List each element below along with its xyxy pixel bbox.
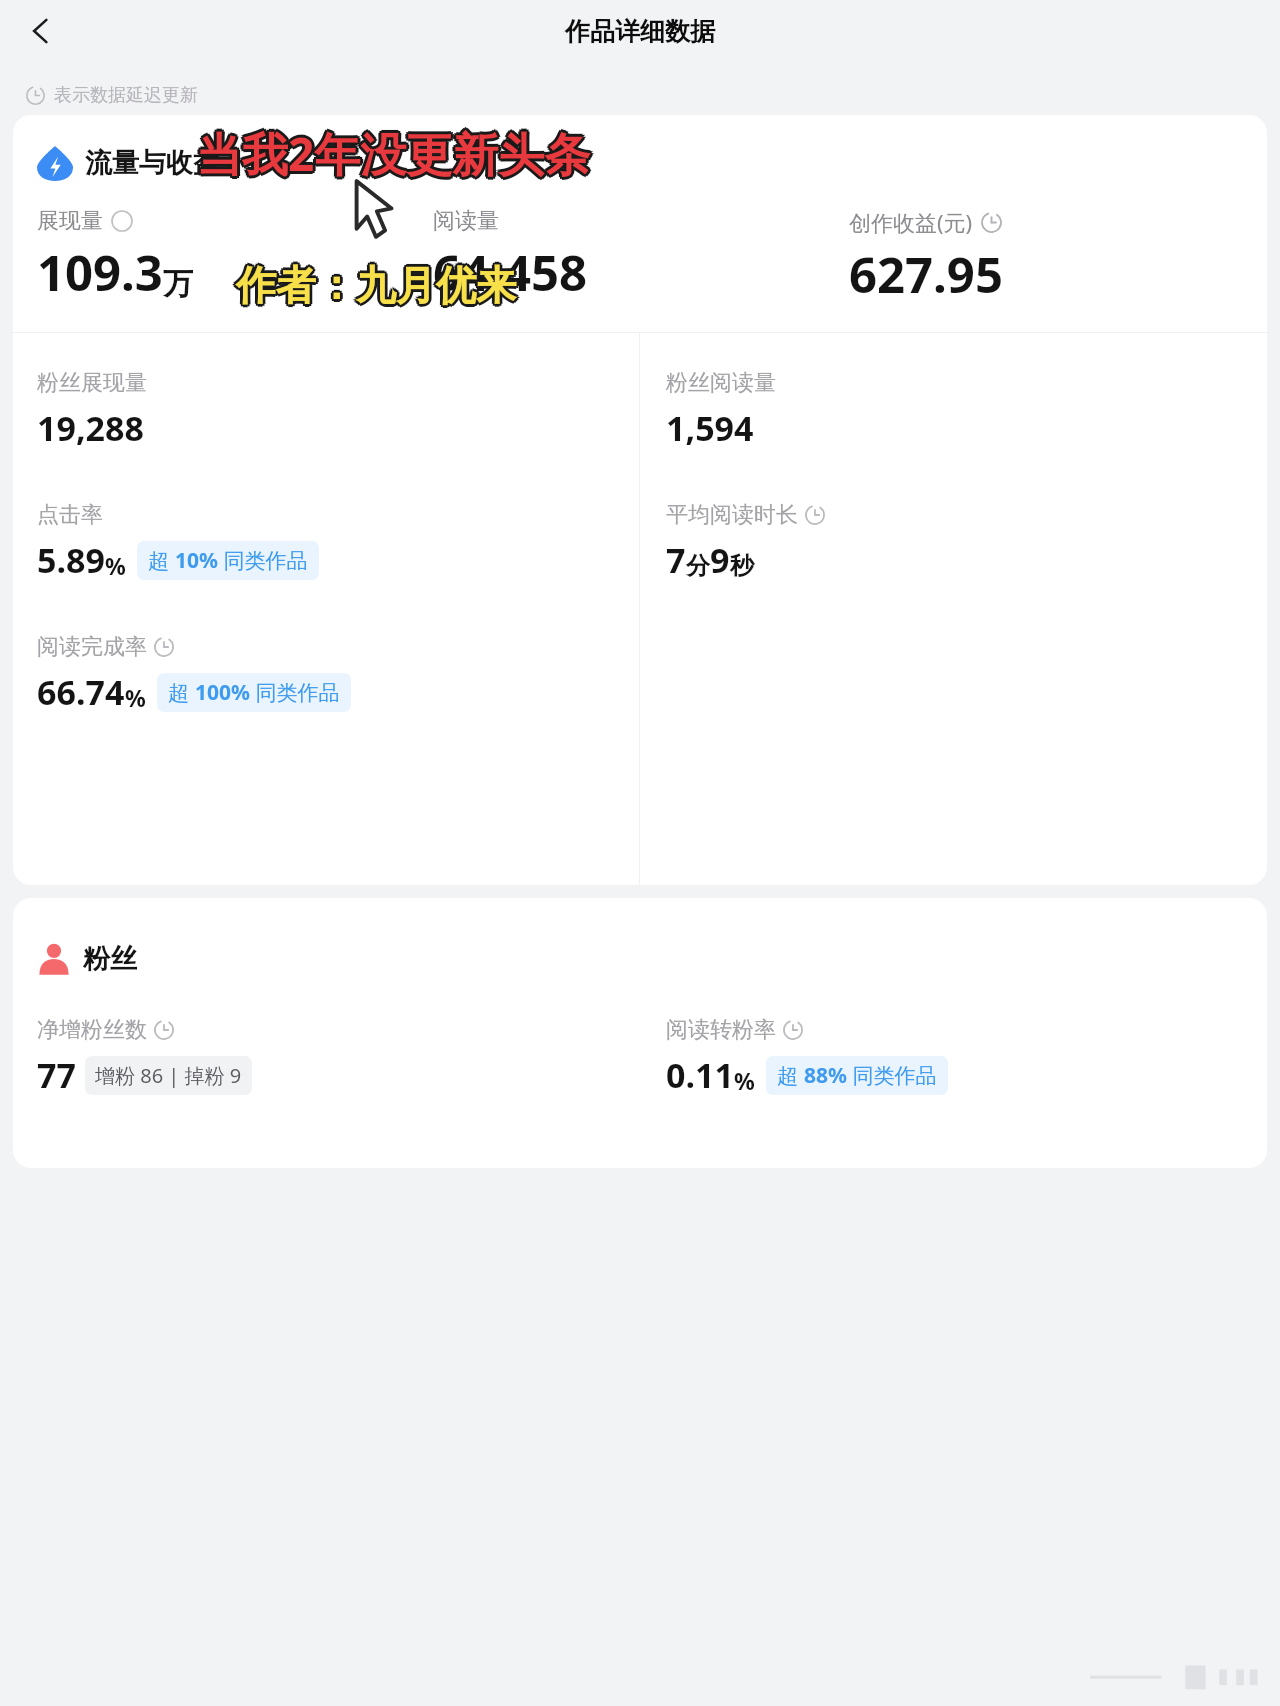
staticText: 作者：九月优来	[236, 263, 516, 313]
staticText: 作者：九月优来	[234, 262, 514, 312]
staticText: 1,594	[666, 405, 754, 451]
staticText: 作者：九月优来	[233, 260, 513, 310]
staticText: 表示数据延迟更新	[54, 84, 198, 107]
staticText: 88%	[804, 1061, 847, 1090]
staticText: 当我2年没更新头条	[196, 119, 591, 182]
staticText: 阅读完成率	[37, 633, 147, 661]
staticText: 109.3	[37, 239, 163, 306]
staticText: 同类作品	[218, 546, 308, 575]
button[interactable]: 超	[137, 541, 319, 580]
staticText: 当我2年没更新头条	[196, 122, 591, 185]
staticText: 作者：九月优来	[236, 257, 516, 307]
staticText: %	[105, 550, 126, 581]
staticText: 5.89	[37, 537, 105, 583]
staticText: 超	[168, 678, 195, 707]
button[interactable]: 超	[766, 1056, 948, 1095]
staticText: 展现量	[37, 207, 103, 235]
staticText: 0.11	[666, 1052, 734, 1098]
staticText: 点击率	[37, 501, 103, 529]
staticText: 净增粉丝数	[37, 1016, 147, 1044]
staticText: 作者：九月优来	[236, 260, 516, 310]
staticText: 当我2年没更新头条	[193, 122, 588, 185]
button[interactable]: 超	[157, 673, 351, 712]
staticText: 阅读转粉率	[666, 1016, 776, 1044]
staticText: 粉丝阅读量	[666, 369, 776, 397]
staticText: 万	[163, 265, 193, 303]
staticText: 流量与收益	[85, 146, 220, 180]
staticText: 10%	[175, 546, 218, 575]
staticText: 超	[777, 1061, 804, 1090]
staticText: 66.74	[37, 669, 125, 715]
staticText: 64,458	[433, 239, 588, 306]
staticText: 同类作品	[250, 678, 340, 707]
staticText: 阅读量	[433, 207, 499, 235]
staticText: 当我2年没更新头条	[194, 120, 589, 183]
staticText: 同类作品	[847, 1061, 937, 1090]
staticText: 当我2年没更新头条	[199, 122, 594, 185]
button[interactable]: Back	[14, 4, 68, 58]
staticText: 当我2年没更新头条	[198, 124, 593, 187]
button[interactable]: 增粉 86 | 掉粉 9	[85, 1056, 252, 1095]
staticText: 19,288	[37, 405, 144, 451]
staticText: 超	[148, 546, 175, 575]
staticText: 作者：九月优来	[239, 260, 519, 310]
staticText: 作品详细数据	[565, 16, 715, 47]
staticText: 作者：九月优来	[238, 258, 518, 308]
staticText: 作者：九月优来	[234, 258, 514, 308]
staticText: 粉丝展现量	[37, 369, 147, 397]
staticText: 当我2年没更新头条	[198, 120, 593, 183]
staticText: 100%	[195, 678, 250, 707]
staticText: %	[734, 1065, 755, 1096]
staticText: 秒	[730, 551, 754, 581]
staticText: 平均阅读时长	[666, 501, 798, 529]
staticText: 分	[686, 551, 710, 581]
staticText: 当我2年没更新头条	[194, 124, 589, 187]
staticText: 创作收益(元)	[849, 207, 973, 237]
staticText: 作者：九月优来	[238, 262, 518, 312]
staticText: 9	[710, 537, 730, 583]
staticText: 当我2年没更新头条	[196, 125, 591, 188]
staticText: 粉丝	[83, 942, 137, 976]
staticText: 增粉 86 | 掉粉 9	[95, 1062, 242, 1089]
staticText: 627.95	[849, 241, 1003, 308]
staticText: 7	[666, 537, 686, 583]
staticText: 77	[37, 1052, 76, 1098]
staticText: %	[125, 682, 146, 713]
